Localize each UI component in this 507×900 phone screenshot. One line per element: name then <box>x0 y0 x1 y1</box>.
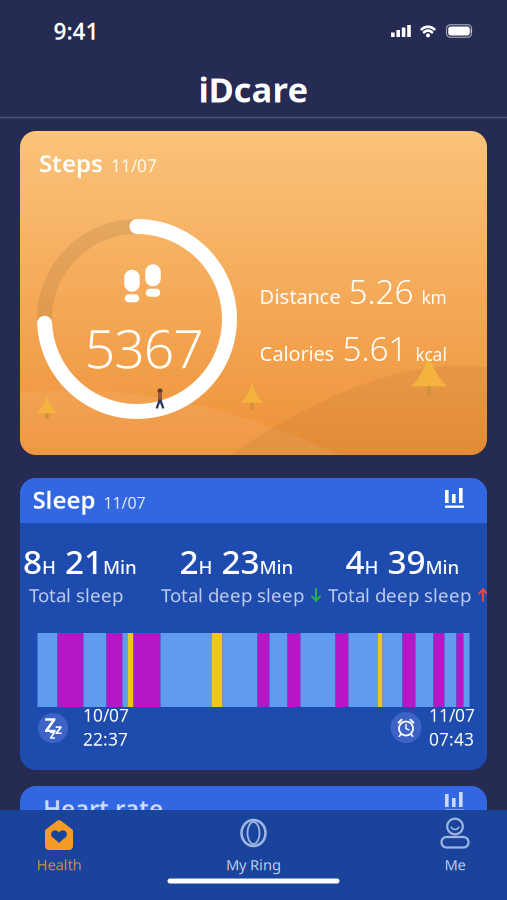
button[interactable]: Me <box>400 813 507 881</box>
staticText: iDcare <box>198 66 308 112</box>
staticText: 4H 39Min <box>345 539 459 583</box>
staticText: Total deep sleep <box>161 583 304 607</box>
staticText: 5.61 <box>342 326 407 370</box>
staticText: Me <box>444 855 465 874</box>
staticText: 2H 23Min <box>179 539 293 583</box>
staticText: Health <box>36 855 81 874</box>
staticText: km <box>421 286 446 309</box>
button[interactable]: My Ring <box>198 813 308 881</box>
staticText: 11/07 <box>103 492 145 513</box>
staticText: z <box>49 726 55 742</box>
staticText: z <box>55 719 62 738</box>
staticText: My Ring <box>226 855 281 874</box>
staticText: 11/07 <box>429 703 475 726</box>
staticText: Heart rate <box>43 792 163 824</box>
staticText: 10/07 <box>83 703 129 726</box>
staticText: Total deep sleep <box>328 583 471 607</box>
staticText: 22:37 <box>83 727 128 750</box>
staticText: 5367 <box>85 312 203 383</box>
button[interactable]: Steps <box>20 131 487 455</box>
staticText: 07:43 <box>429 727 474 750</box>
staticText: 11/07 <box>111 154 157 177</box>
staticText: Z <box>44 711 56 738</box>
staticText: kcal <box>415 343 446 366</box>
staticText: 5.26 <box>348 269 413 313</box>
button[interactable]: Heart rate <box>20 786 487 842</box>
staticText: 8H 21Min <box>23 539 137 583</box>
staticText: Calories <box>259 340 334 366</box>
button[interactable]: Health <box>4 813 114 881</box>
staticText: Distance <box>259 283 340 309</box>
staticText: Steps <box>39 147 103 179</box>
staticText: Sleep <box>32 484 95 515</box>
staticText: 9:41 <box>53 16 98 46</box>
button[interactable]: Sleep <box>20 478 487 770</box>
staticText: Total sleep <box>29 583 123 607</box>
